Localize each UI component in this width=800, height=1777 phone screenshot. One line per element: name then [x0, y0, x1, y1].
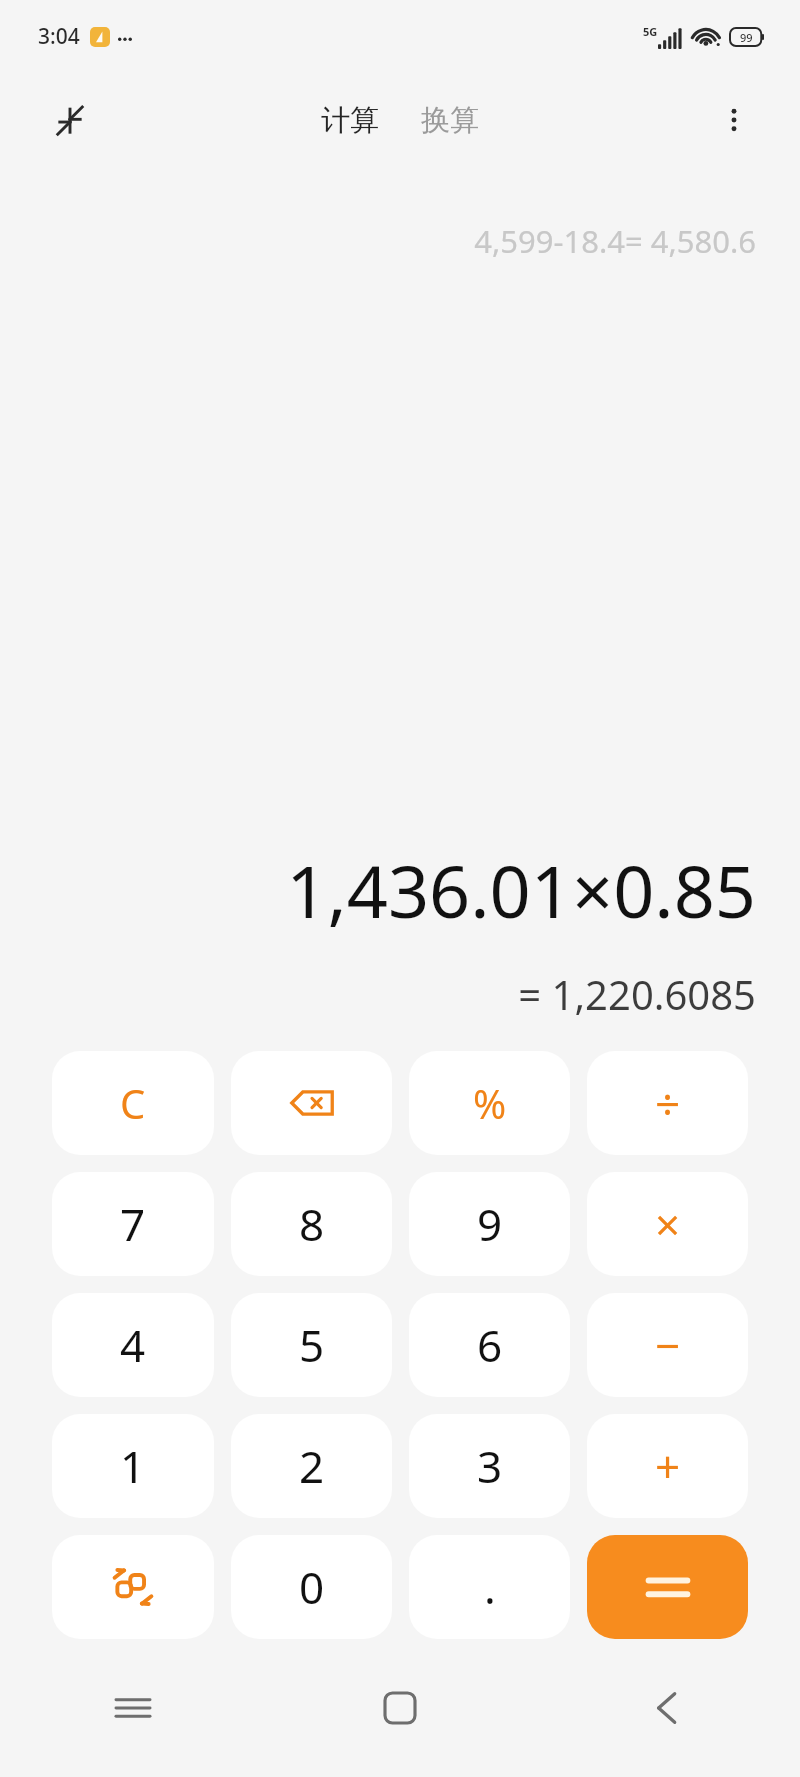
staticText: + [655, 1436, 681, 1496]
button[interactable]: % [409, 1051, 570, 1155]
staticText: C [120, 1076, 146, 1130]
button[interactable]: 换算 [411, 96, 489, 145]
staticText: 5 [299, 1315, 325, 1375]
button[interactable]: 3 [409, 1414, 570, 1518]
button[interactable]: 9 [409, 1172, 570, 1276]
staticText: 换算 [421, 102, 479, 139]
button[interactable]: 4 [52, 1293, 214, 1397]
button[interactable]: Backspace [231, 1051, 392, 1155]
button[interactable]: Collapse [44, 94, 96, 146]
staticText: 4,599-18.4= 4,580.6 [0, 220, 756, 262]
staticText: 8 [299, 1194, 325, 1254]
button[interactable]: 7 [52, 1172, 214, 1276]
button[interactable] [587, 1535, 748, 1639]
button[interactable]: Back [533, 1673, 800, 1743]
staticText: 9 [477, 1194, 503, 1254]
button[interactable]: . [409, 1535, 570, 1639]
button[interactable]: 计算 [311, 96, 389, 145]
staticText: ÷ [655, 1073, 681, 1133]
staticText: 6 [477, 1315, 503, 1375]
staticText: 5G [643, 24, 658, 39]
button[interactable]: C [52, 1051, 214, 1155]
staticText: % [473, 1076, 507, 1130]
button[interactable]: + [587, 1414, 748, 1518]
button[interactable]: More options [708, 94, 760, 146]
button[interactable]: × [587, 1172, 748, 1276]
button[interactable]: 1 [52, 1414, 214, 1518]
button[interactable]: 0 [231, 1535, 392, 1639]
button[interactable]: 5 [231, 1293, 392, 1397]
staticText: − [655, 1315, 681, 1375]
staticText: 0 [299, 1557, 325, 1617]
button[interactable]: Recents [0, 1673, 266, 1743]
button[interactable]: Home [266, 1673, 533, 1743]
button[interactable]: 6 [409, 1293, 570, 1397]
staticText: 99 [740, 30, 753, 45]
staticText: 1,436.01×0.85 [40, 841, 756, 939]
button[interactable]: 8 [231, 1172, 392, 1276]
button[interactable]: − [587, 1293, 748, 1397]
staticText: 计算 [321, 102, 379, 139]
staticText: . [484, 1557, 496, 1617]
staticText: = 1,220.6085 [40, 967, 756, 1021]
button[interactable]: 2 [231, 1414, 392, 1518]
staticText: 3 [477, 1436, 503, 1496]
staticText: 2 [299, 1436, 325, 1496]
staticText: 7 [120, 1194, 146, 1254]
staticText: 1 [120, 1436, 146, 1496]
staticText: × [655, 1194, 681, 1254]
staticText: 3:04 [38, 22, 80, 51]
button[interactable]: Scientific mode [52, 1535, 214, 1639]
button[interactable]: ÷ [587, 1051, 748, 1155]
staticText: 4 [120, 1315, 146, 1375]
